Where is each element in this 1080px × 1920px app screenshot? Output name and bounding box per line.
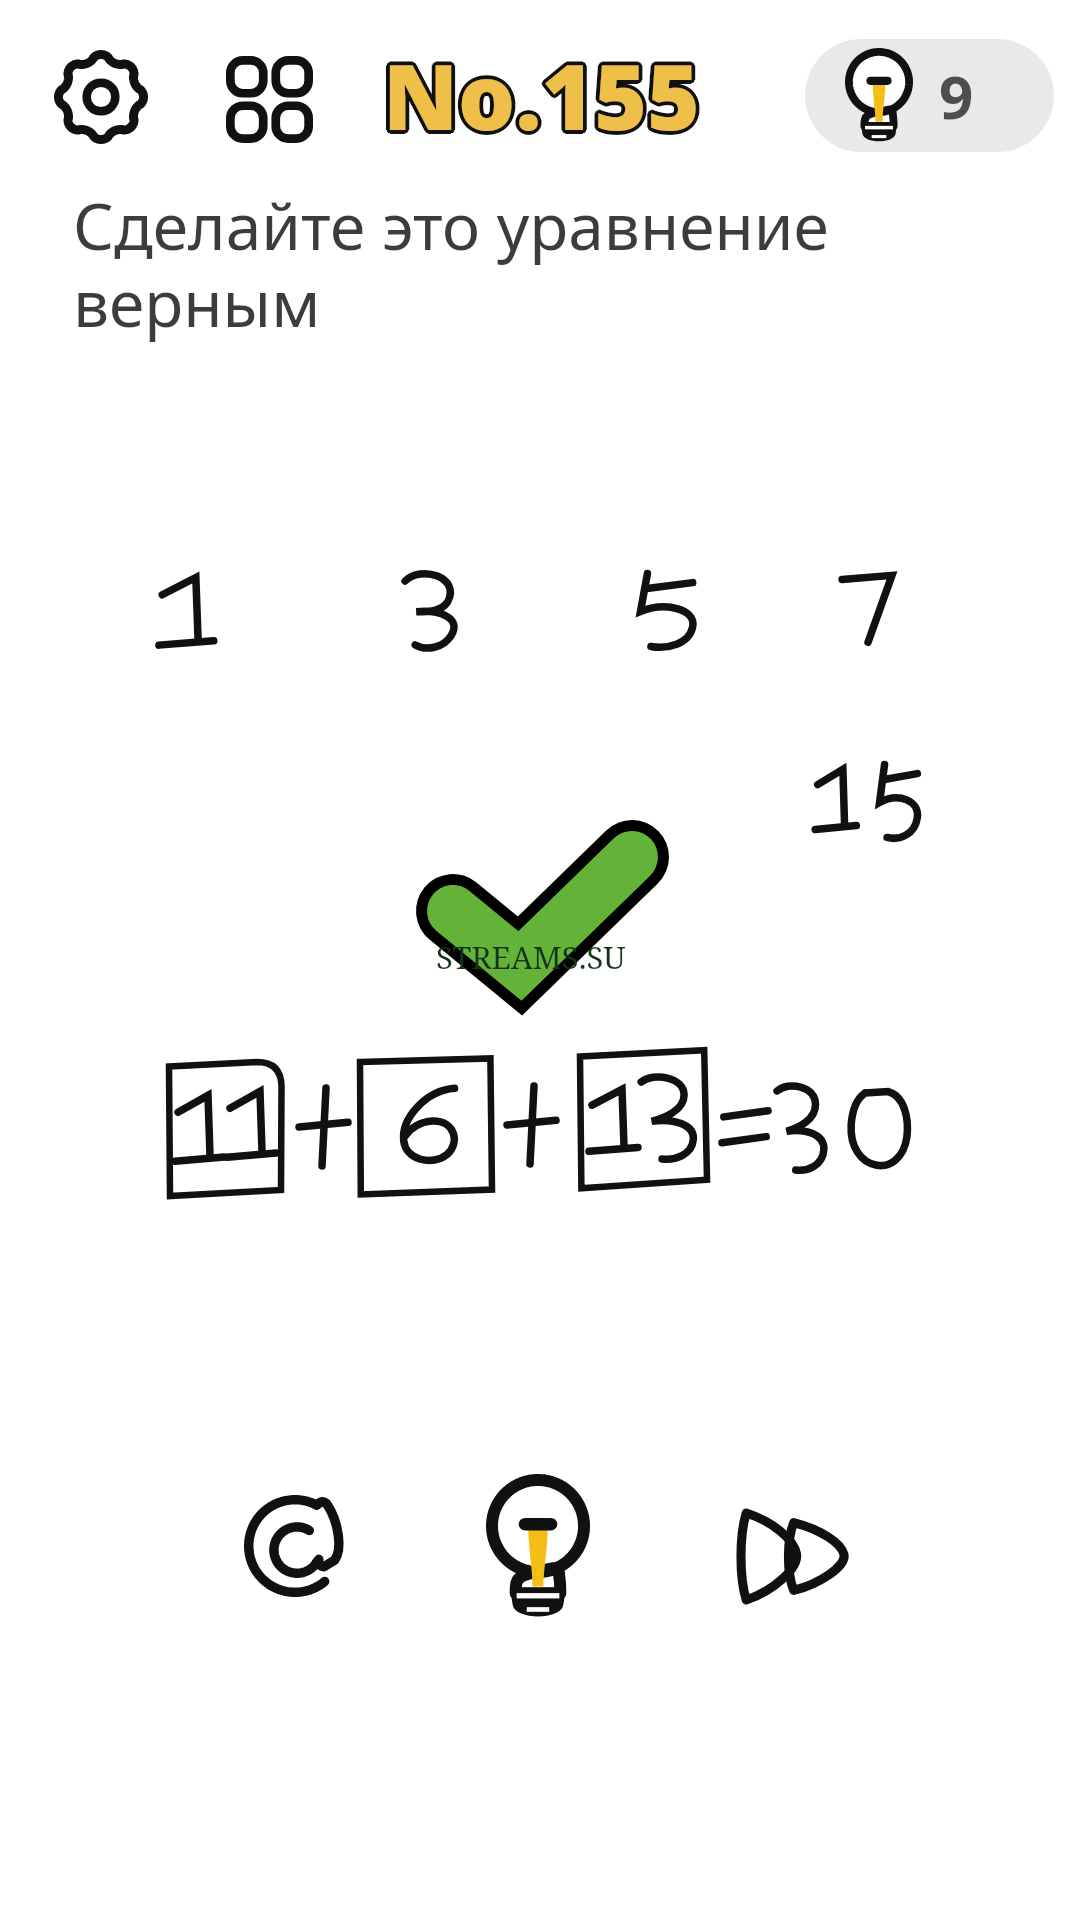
- staticText: No.155: [384, 32, 701, 155]
- staticText: No.155: [382, 34, 699, 157]
- staticText: No.155: [387, 34, 704, 157]
- staticText: No.155: [383, 38, 700, 161]
- staticText: No.155: [379, 34, 696, 157]
- staticText: No.155: [383, 30, 700, 153]
- staticText: No.155: [381, 33, 698, 156]
- staticText: No.155: [385, 35, 702, 158]
- staticText: No.155: [385, 32, 702, 155]
- staticText: No.155: [382, 33, 699, 156]
- staticText: No.155: [381, 36, 698, 159]
- button[interactable]: Settings: [46, 42, 156, 152]
- staticText: No.155: [383, 35, 700, 158]
- staticText: No.155: [381, 34, 698, 157]
- staticText: No.155: [380, 35, 697, 158]
- staticText: No.155: [384, 33, 701, 156]
- staticText: No.155: [382, 37, 699, 160]
- staticText: No.155: [386, 34, 703, 157]
- button[interactable]: Skip level: [728, 1486, 848, 1606]
- staticText: No.155: [385, 34, 702, 157]
- staticText: No.155: [383, 32, 700, 155]
- staticText: No.155: [386, 35, 703, 158]
- staticText: No.155: [380, 34, 697, 157]
- staticText: Сделайте это уравнение верным: [73, 182, 873, 345]
- button[interactable]: Hints remaining: 9: [805, 39, 1054, 152]
- staticText: No.155: [384, 37, 701, 160]
- staticText: No.155: [386, 36, 703, 159]
- staticText: STREAMS.SU: [436, 936, 626, 978]
- staticText: No.155: [380, 32, 697, 155]
- staticText: No.155: [384, 34, 701, 157]
- staticText: No.155: [384, 36, 701, 159]
- staticText: No.155: [382, 36, 699, 159]
- staticText: No.155: [382, 31, 699, 154]
- staticText: No.155: [381, 37, 698, 160]
- staticText: No.155: [386, 32, 703, 155]
- staticText: No.155: [383, 33, 700, 156]
- staticText: No.155: [383, 36, 700, 159]
- staticText: 9: [939, 55, 974, 137]
- button[interactable]: Level list: [214, 44, 324, 154]
- staticText: No.155: [382, 35, 699, 158]
- staticText: No.155: [385, 36, 702, 159]
- staticText: No.155: [383, 31, 700, 154]
- staticText: No.155: [382, 32, 699, 155]
- staticText: No.155: [381, 32, 698, 155]
- staticText: No.155: [384, 31, 701, 154]
- staticText: No.155: [384, 35, 701, 158]
- staticText: No.155: [380, 33, 697, 156]
- staticText: No.155: [380, 36, 697, 159]
- staticText: No.155: [383, 34, 700, 157]
- staticText: No.155: [385, 31, 702, 154]
- staticText: No.155: [385, 33, 702, 156]
- staticText: No.155: [381, 35, 698, 158]
- staticText: No.155: [386, 33, 703, 156]
- staticText: No.155: [383, 37, 700, 160]
- button[interactable]: Restart level: [235, 1486, 355, 1606]
- staticText: No.155: [385, 37, 702, 160]
- staticText: No.155: [381, 31, 698, 154]
- button[interactable]: Use a hint: [478, 1462, 598, 1630]
